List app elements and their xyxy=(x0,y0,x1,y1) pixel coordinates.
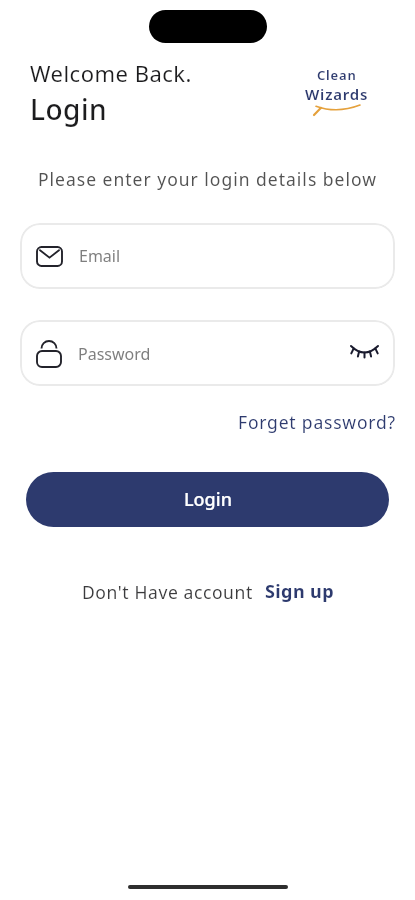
staticText: Welcome Back. xyxy=(30,58,193,88)
staticText: Email xyxy=(79,245,121,267)
staticText: Please enter your login details below xyxy=(38,167,377,191)
staticText: Login xyxy=(184,487,232,512)
button[interactable]: Login xyxy=(26,472,389,527)
button[interactable]: Password xyxy=(20,320,395,386)
staticText: Don't Have account xyxy=(82,580,253,604)
staticText: Wizards xyxy=(305,84,369,104)
staticText: Login xyxy=(30,90,108,128)
staticText: Password xyxy=(78,343,151,365)
staticText: Clean xyxy=(317,66,357,84)
button[interactable]: Email xyxy=(20,223,395,289)
button[interactable]: Forget password? xyxy=(238,410,396,434)
button[interactable]: Sign up xyxy=(265,579,334,604)
